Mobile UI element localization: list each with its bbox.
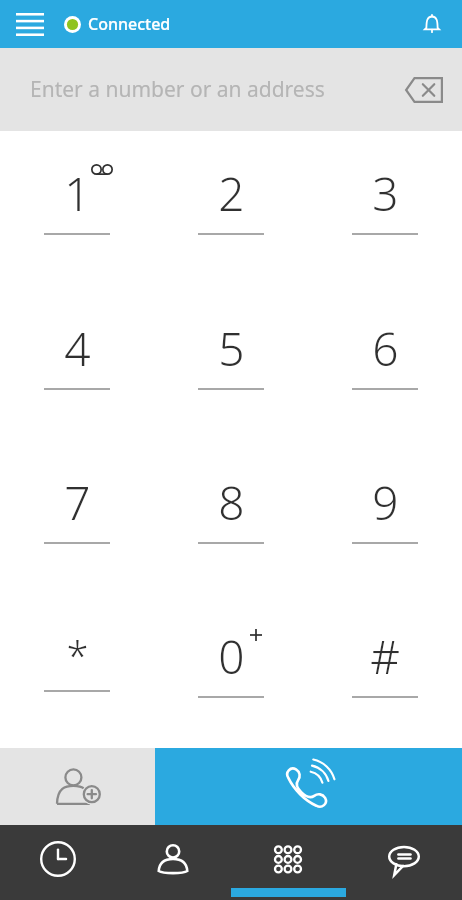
button[interactable]: Messages [346,825,462,900]
button[interactable]: 5 [154,286,308,440]
staticText: 6 [372,317,399,380]
staticText: 4 [64,317,91,380]
staticText: 3 [372,162,399,225]
button[interactable]: 9 [308,440,462,594]
button[interactable]: Backspace [398,64,450,116]
staticText: 5 [218,317,245,380]
staticText: 7 [64,471,91,534]
button[interactable]: * [0,594,154,748]
staticText: 9 [372,471,399,534]
button[interactable]: # [308,594,462,748]
staticText: Connected [88,13,171,35]
button[interactable]: 2 [154,131,308,286]
button[interactable]: 1 [0,131,154,286]
button[interactable]: 4 [0,286,154,440]
staticText: * [66,628,89,682]
button[interactable]: Notifications [410,2,454,46]
staticText: # [370,625,400,688]
button[interactable]: Add contact [0,748,155,825]
button[interactable]: 6 [308,286,462,440]
button[interactable]: Contacts [115,825,230,900]
button[interactable]: 0 [154,594,308,748]
button[interactable]: 8 [154,440,308,594]
staticText: 8 [218,471,245,534]
staticText: 2 [218,162,245,225]
button[interactable]: Recents [0,825,115,900]
staticText: 1 [64,162,91,225]
staticText: Enter a number or an address [30,75,325,104]
button[interactable]: Connected [64,13,171,35]
button[interactable]: 7 [0,440,154,594]
button[interactable]: 3 [308,131,462,286]
button[interactable]: Call [155,748,462,825]
button[interactable]: Dialpad [230,825,346,900]
button[interactable]: Enter a number or an address [0,48,462,131]
staticText: 0 [218,625,245,688]
button[interactable]: Menu [8,2,52,46]
